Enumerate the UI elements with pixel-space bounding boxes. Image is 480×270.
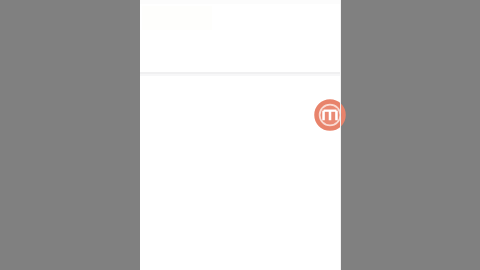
button[interactable]: Brand logo: [315, 100, 345, 130]
